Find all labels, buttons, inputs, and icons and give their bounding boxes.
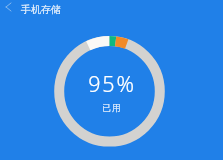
- staticText: 95%: [88, 69, 136, 98]
- staticText: 手机存储: [21, 3, 61, 16]
- staticText: 已用: [102, 103, 122, 114]
- button[interactable]: Back: [0, 0, 16, 18]
